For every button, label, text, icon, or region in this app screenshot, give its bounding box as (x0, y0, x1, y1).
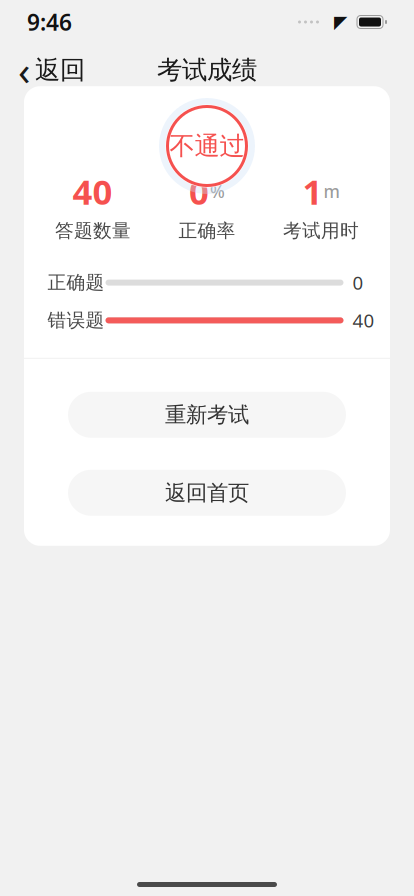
staticText: 1 (302, 168, 322, 214)
staticText: 9:46 (27, 7, 72, 37)
button[interactable]: ‹ (0, 48, 103, 92)
staticText: ◤ (334, 12, 347, 32)
staticText: 考试成绩 (157, 54, 257, 85)
staticText: 0 (189, 168, 209, 214)
staticText: 重新考试 (165, 402, 249, 428)
staticText: 40 (352, 308, 374, 333)
staticText: 正确率 (178, 219, 235, 242)
staticText: 错误题 (47, 309, 104, 332)
staticText: 返回 (35, 54, 85, 85)
staticText: ‹ (18, 43, 30, 96)
button[interactable]: 重新考试 (68, 392, 346, 438)
staticText: 考试用时 (283, 219, 359, 242)
staticText: 答题数量 (55, 219, 131, 242)
staticText: 正确题 (47, 271, 104, 294)
staticText: 40 (72, 168, 112, 214)
staticText: 0 (352, 270, 363, 295)
staticText: m (323, 180, 339, 203)
button[interactable]: 返回首页 (68, 470, 346, 516)
staticText: 不通过 (169, 130, 244, 161)
staticText: 返回首页 (165, 480, 249, 506)
staticText: % (210, 180, 225, 203)
